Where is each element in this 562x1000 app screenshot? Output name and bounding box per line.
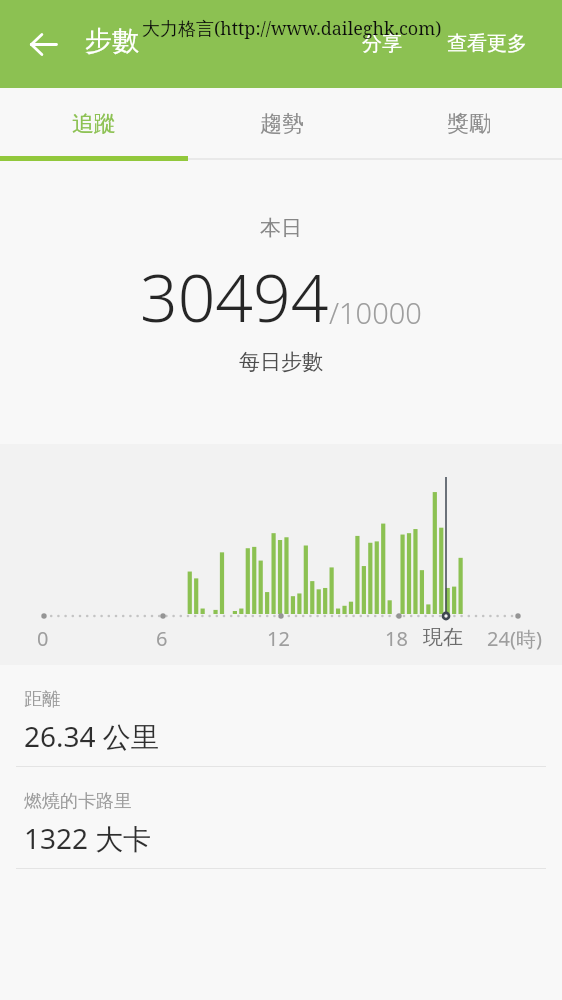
staticText: 燃燒的卡路里 <box>24 790 132 813</box>
button[interactable]: 追蹤 <box>0 88 188 159</box>
staticText: 24(時) <box>487 625 542 652</box>
staticText: 本日 <box>260 215 302 241</box>
button[interactable]: 距離 <box>0 665 562 766</box>
staticText: 獎勵 <box>447 110 491 138</box>
staticText: 12 <box>267 625 290 652</box>
staticText: 查看更多 <box>447 31 527 56</box>
staticText: 1322 大卡 <box>24 819 152 857</box>
staticText: 步數 <box>85 24 139 58</box>
staticText: 大力格言(http://www.daileghk.com) <box>142 16 442 41</box>
button[interactable]: Back <box>16 17 70 71</box>
staticText: 26.34 公里 <box>24 717 159 755</box>
staticText: 每日步數 <box>239 349 323 375</box>
staticText: 趨勢 <box>260 110 304 138</box>
button[interactable]: 查看更多 <box>437 16 537 71</box>
staticText: 現在 <box>423 625 463 650</box>
staticText: 距離 <box>24 688 60 711</box>
staticText: 18 <box>385 625 408 652</box>
staticText: 分享 <box>362 31 402 56</box>
staticText: 30494 <box>140 251 329 341</box>
button[interactable]: 獎勵 <box>375 88 562 159</box>
button[interactable]: 趨勢 <box>188 88 375 159</box>
staticText: 0 <box>37 625 49 652</box>
staticText: 6 <box>156 625 168 652</box>
staticText: /10000 <box>329 293 422 332</box>
button[interactable]: 燃燒的卡路里 <box>0 767 562 868</box>
staticText: 追蹤 <box>72 110 116 138</box>
button[interactable]: 分享 <box>352 16 412 71</box>
